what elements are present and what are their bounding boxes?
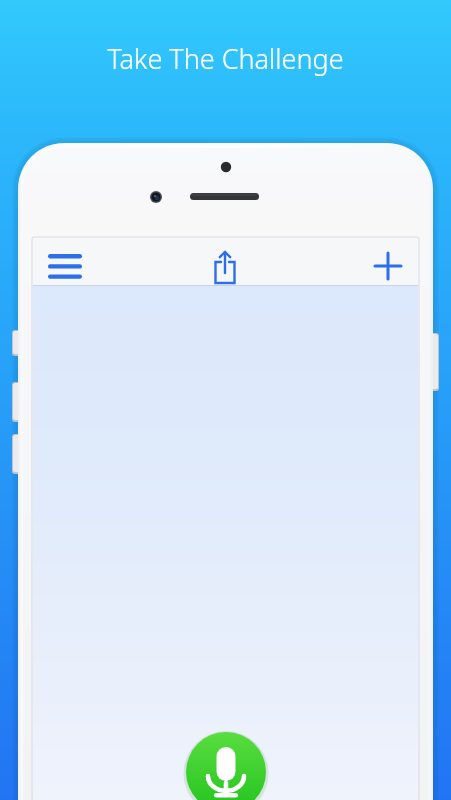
staticText: Take The Challenge xyxy=(0,40,451,77)
button[interactable]: Share xyxy=(201,242,250,290)
button[interactable]: Menu xyxy=(38,242,94,290)
button[interactable]: Record voice xyxy=(186,732,266,800)
button[interactable]: Add xyxy=(364,242,412,290)
